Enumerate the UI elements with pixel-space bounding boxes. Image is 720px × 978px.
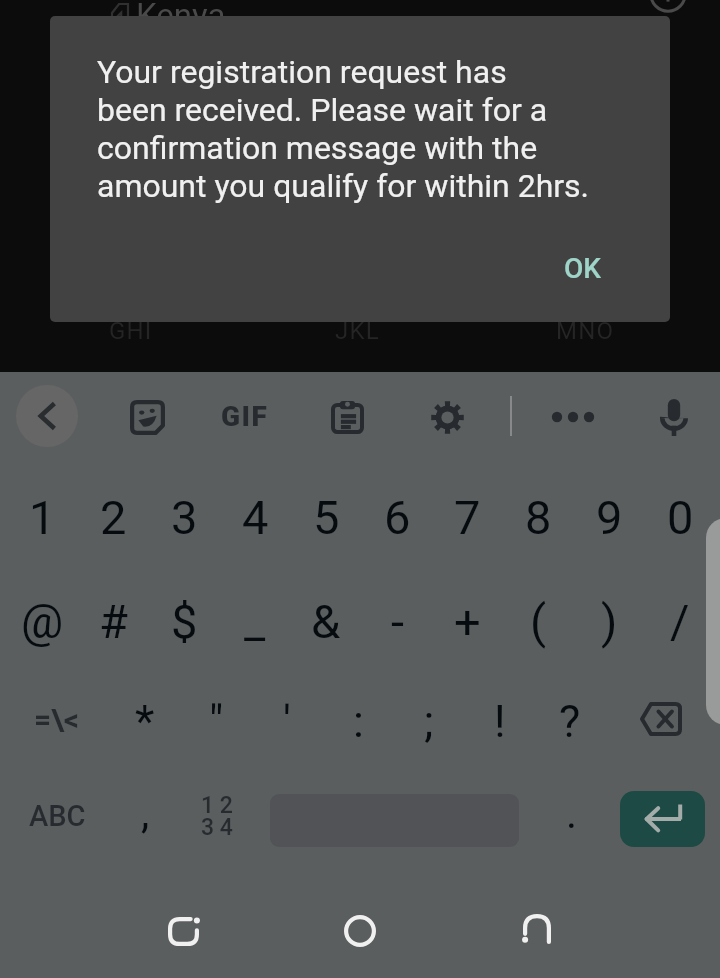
- staticText: #: [99, 594, 128, 649]
- staticText: ': [283, 695, 291, 748]
- button[interactable]: +: [431, 571, 503, 671]
- staticText: ;: [424, 695, 434, 748]
- staticText: 9: [596, 490, 623, 545]
- button[interactable]: Settings: [417, 387, 477, 447]
- staticText: _: [244, 594, 266, 649]
- button[interactable]: ): [573, 571, 645, 671]
- button[interactable]: 4: [219, 467, 291, 567]
- button[interactable]: -: [361, 571, 433, 671]
- staticText: Your registration request has been recei…: [97, 53, 590, 205]
- button[interactable]: ;: [393, 676, 465, 766]
- button[interactable]: @: [6, 571, 78, 671]
- other: Info: [649, 0, 687, 13]
- staticText: GIF: [221, 400, 269, 433]
- button[interactable]: 8: [502, 467, 574, 567]
- staticText: ABC: [29, 799, 86, 833]
- staticText: JKL: [335, 317, 380, 345]
- button[interactable]: #: [77, 571, 149, 671]
- button[interactable]: .: [536, 783, 608, 843]
- staticText: ,: [141, 789, 150, 838]
- button[interactable]: !: [464, 676, 536, 766]
- button[interactable]: (: [502, 571, 574, 671]
- button[interactable]: 1: [6, 467, 78, 567]
- button[interactable]: More options: [543, 387, 603, 447]
- staticText: @: [21, 594, 64, 649]
- staticText: 6: [384, 490, 411, 545]
- button[interactable]: Stickers: [117, 387, 177, 447]
- staticText: 4: [242, 490, 269, 545]
- staticText: GHI: [109, 317, 153, 345]
- button[interactable]: :: [322, 676, 394, 766]
- button[interactable]: Backspace: [625, 674, 697, 764]
- staticText: 7: [454, 490, 481, 545]
- button[interactable]: ": [180, 676, 252, 766]
- button[interactable]: &: [290, 571, 362, 671]
- staticText: MNO: [556, 317, 615, 345]
- staticText: /: [670, 594, 690, 649]
- staticText: 5: [313, 490, 340, 545]
- staticText: 8: [525, 490, 552, 545]
- button[interactable]: 2: [77, 467, 149, 567]
- button[interactable]: 9: [573, 467, 645, 567]
- button[interactable]: Enter: [620, 791, 705, 847]
- button[interactable]: Home: [330, 901, 390, 961]
- staticText: 1 2 3 4: [201, 792, 233, 840]
- button[interactable]: ?: [534, 676, 606, 766]
- button[interactable]: Voice input: [644, 387, 704, 447]
- staticText: .: [566, 789, 578, 838]
- button[interactable]: ABC: [17, 786, 97, 846]
- button[interactable]: Recent apps: [507, 899, 567, 959]
- staticText: $: [171, 594, 198, 649]
- button[interactable]: 0: [644, 467, 716, 567]
- staticText: (: [530, 594, 547, 649]
- button[interactable]: _: [219, 571, 291, 671]
- button[interactable]: Clipboard: [317, 387, 377, 447]
- button[interactable]: 6: [361, 467, 433, 567]
- button[interactable]: ': [251, 676, 323, 766]
- button[interactable]: /: [644, 571, 716, 671]
- staticText: 0: [667, 490, 694, 545]
- button[interactable]: GIF: [209, 386, 281, 446]
- staticText: ": [209, 695, 224, 748]
- button[interactable]: 7: [431, 467, 503, 567]
- button[interactable]: 3: [148, 467, 220, 567]
- staticText: 1: [29, 490, 56, 545]
- staticText: &: [311, 594, 341, 649]
- button[interactable]: 5: [290, 467, 362, 567]
- button[interactable]: ,: [109, 783, 181, 843]
- button[interactable]: Back: [16, 385, 78, 447]
- staticText: !: [494, 695, 506, 748]
- staticText: OK: [564, 252, 601, 285]
- staticText: ): [601, 594, 618, 649]
- button[interactable]: $: [148, 571, 220, 671]
- button[interactable]: 1 2 3 4: [181, 787, 253, 845]
- staticText: *: [135, 695, 155, 748]
- button[interactable]: *: [109, 676, 181, 766]
- staticText: +: [454, 594, 481, 649]
- staticText: ?: [559, 695, 581, 748]
- staticText: Kenya: [136, 0, 226, 35]
- staticText: 2: [100, 490, 127, 545]
- button[interactable]: OK: [540, 240, 625, 297]
- button[interactable]: =\<: [21, 674, 93, 764]
- staticText: 3: [171, 490, 198, 545]
- button[interactable]: Back: [153, 901, 213, 961]
- staticText: :: [353, 695, 364, 748]
- staticText: =\<: [34, 702, 80, 737]
- staticText: -: [391, 594, 404, 649]
